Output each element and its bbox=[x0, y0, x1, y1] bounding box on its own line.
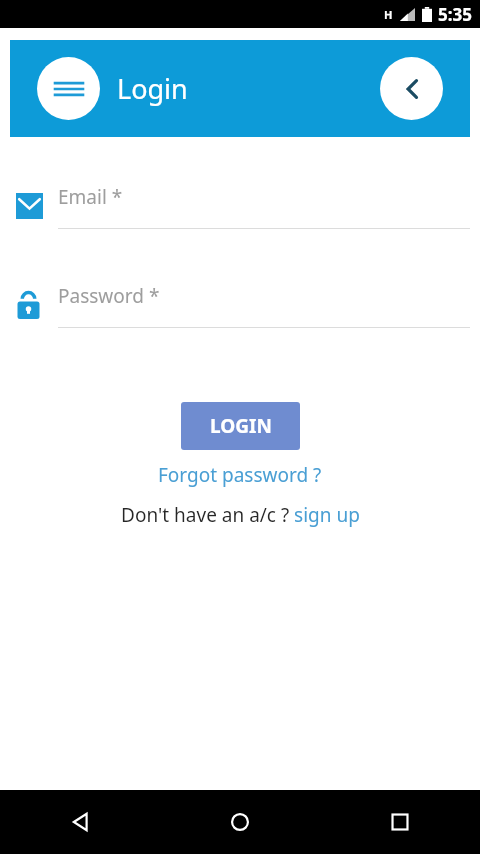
staticText: H bbox=[384, 7, 393, 22]
staticText: Forgot password ? bbox=[158, 462, 322, 488]
button[interactable]: Menu bbox=[37, 57, 100, 120]
staticText: Email * bbox=[58, 184, 123, 210]
staticText: Login bbox=[117, 70, 188, 107]
button[interactable]: Password * bbox=[0, 281, 480, 328]
button[interactable]: Back bbox=[380, 57, 443, 120]
staticText: Password * bbox=[58, 283, 160, 309]
button[interactable]: Don't have an a/c ? sign up bbox=[0, 502, 480, 528]
staticText: Don't have an a/c ? sign up bbox=[121, 502, 360, 528]
staticText: 5:35 bbox=[438, 3, 472, 26]
button[interactable]: Recents bbox=[320, 790, 480, 854]
button[interactable]: Forgot password ? bbox=[0, 462, 480, 488]
button[interactable]: LOGIN bbox=[181, 402, 300, 450]
button[interactable]: Email * bbox=[0, 182, 480, 229]
staticText: LOGIN bbox=[210, 413, 272, 439]
button[interactable]: Home bbox=[160, 790, 320, 854]
button[interactable]: Back bbox=[0, 790, 160, 854]
